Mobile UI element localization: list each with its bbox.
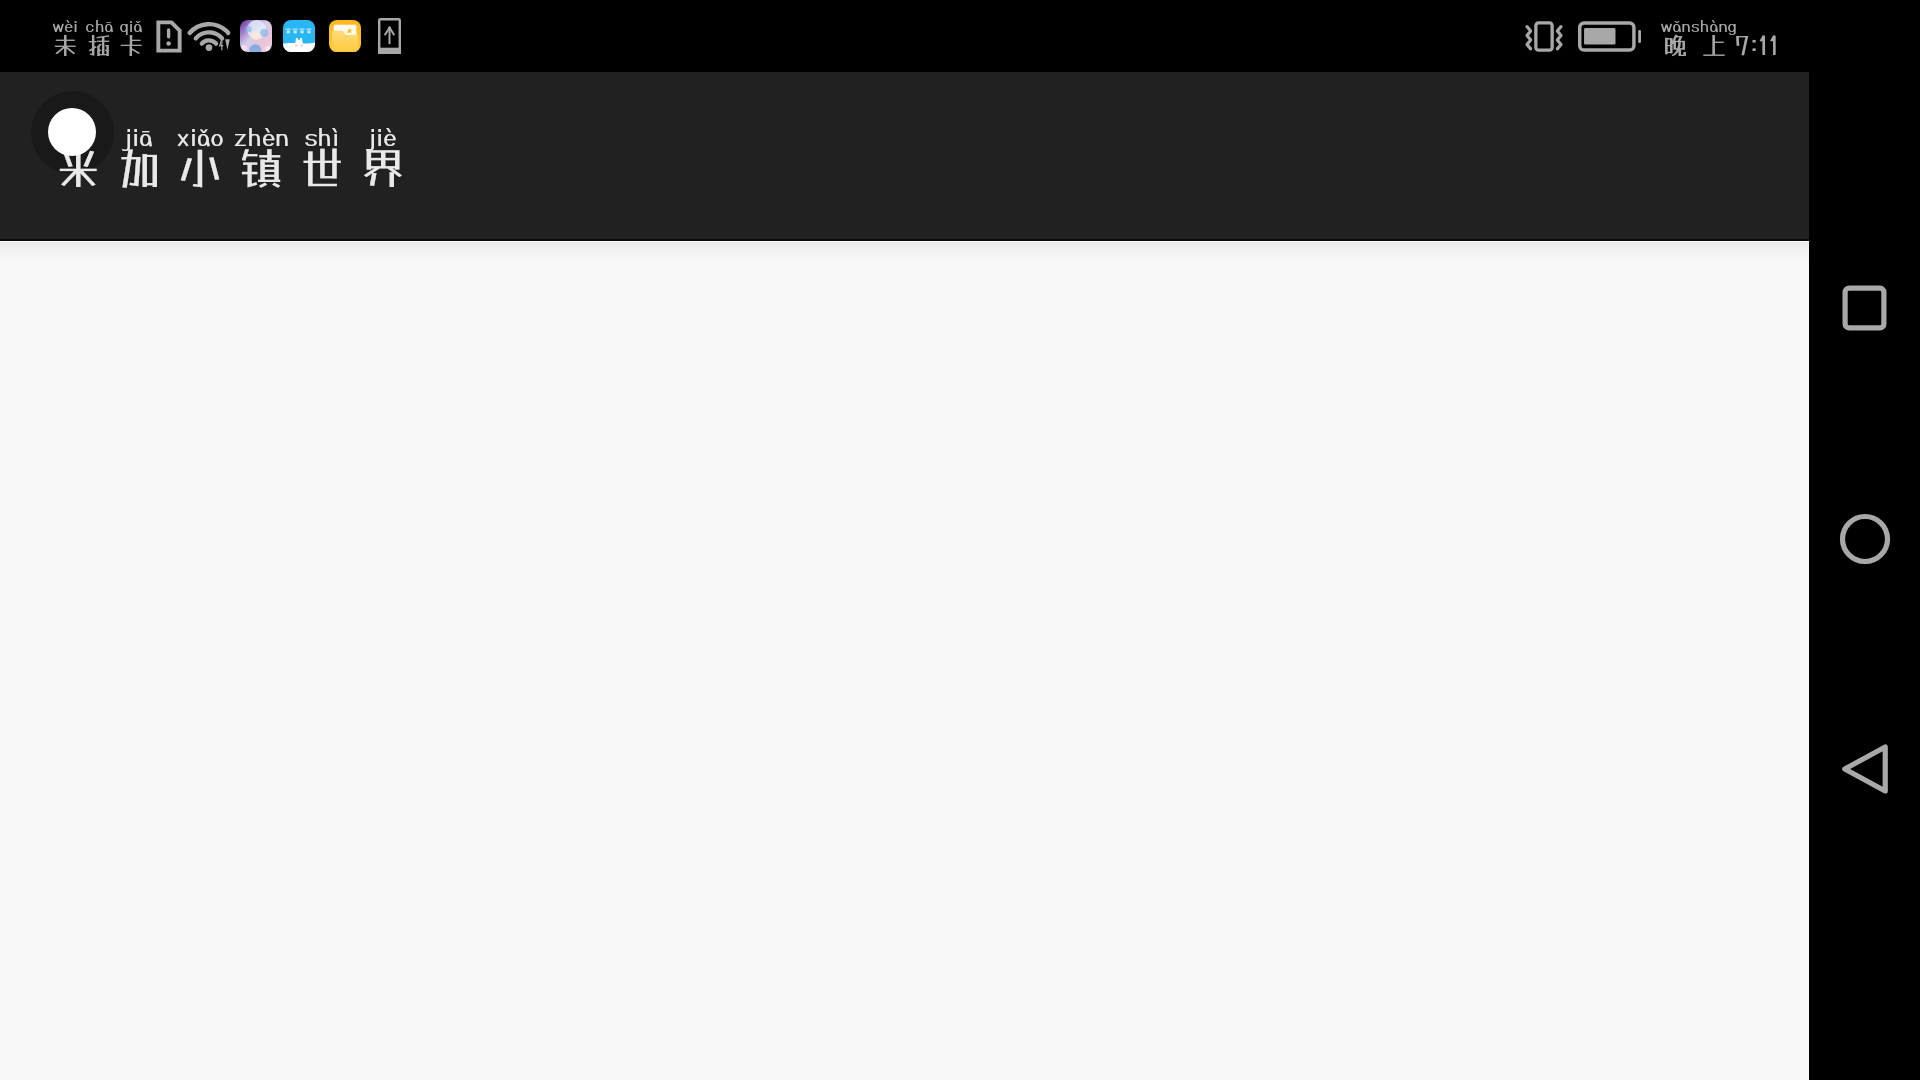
- staticText: 小: [178, 142, 222, 194]
- other: Battery: [1578, 20, 1641, 53]
- button[interactable]: Back: [1831, 733, 1898, 805]
- button[interactable]: Home: [1831, 503, 1898, 575]
- other: USB file transfer: [378, 18, 401, 54]
- other: No SIM card: [156, 20, 182, 53]
- button[interactable]: Recents: [1831, 272, 1898, 344]
- staticText: jiè: [369, 122, 397, 150]
- staticText: xiǎo: [176, 122, 224, 150]
- staticText: shàng: [1691, 16, 1737, 35]
- staticText: chā: [85, 16, 114, 35]
- staticText: 米: [56, 142, 100, 194]
- other: Loading: [48, 108, 96, 156]
- staticText: 未: [53, 31, 77, 59]
- other: Homework app notification: [283, 20, 315, 52]
- staticText: shì: [304, 122, 340, 150]
- staticText: 界: [361, 142, 405, 194]
- staticText: 镇: [239, 142, 283, 194]
- staticText: 加: [117, 142, 161, 194]
- button[interactable]: mǐ: [24, 84, 414, 229]
- other: File manager notification: [329, 20, 361, 52]
- staticText: 晚: [1662, 30, 1688, 59]
- staticText: qiǎ: [119, 16, 143, 35]
- staticText: wèi: [52, 16, 78, 35]
- staticText: 上: [1701, 30, 1727, 59]
- other: Game notification: [240, 20, 272, 52]
- staticText: 7:11: [1735, 29, 1780, 60]
- other: Wi-Fi connected: [191, 20, 230, 52]
- other: Vibrate mode: [1522, 20, 1566, 53]
- staticText: jiā: [125, 122, 153, 150]
- staticText: zhèn: [233, 122, 289, 150]
- staticText: wǎn: [1660, 16, 1691, 35]
- staticText: 世: [300, 142, 344, 194]
- staticText: 卡: [119, 31, 143, 59]
- staticText: 插: [87, 31, 111, 59]
- staticText: mǐ: [64, 122, 91, 150]
